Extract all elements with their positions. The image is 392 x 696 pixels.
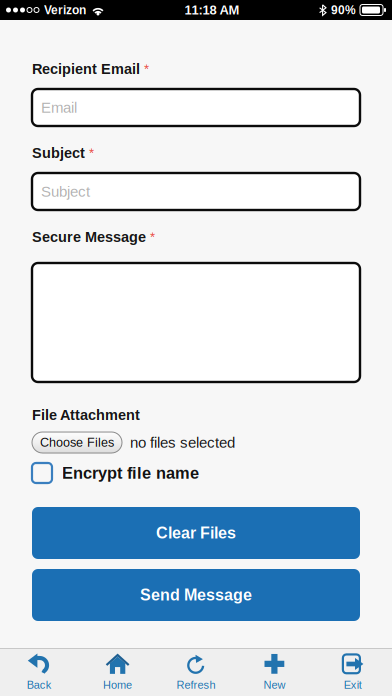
button[interactable]: Exit: [314, 649, 392, 696]
staticText: File Attachment: [32, 407, 140, 423]
staticText: Subject: [41, 183, 90, 200]
staticText: no files selected: [130, 434, 235, 451]
staticText: *: [89, 146, 94, 160]
staticText: Verizon: [44, 3, 86, 17]
staticText: Subject: [32, 145, 85, 161]
staticText: Refresh: [176, 679, 215, 691]
staticText: 90%: [331, 3, 356, 17]
staticText: Home: [103, 679, 132, 691]
staticText: Exit: [344, 679, 362, 691]
button[interactable]: Back: [0, 649, 78, 696]
staticText: New: [263, 679, 285, 691]
staticText: Back: [27, 679, 52, 691]
staticText: 11:18 AM: [184, 3, 239, 17]
staticText: Secure Message: [32, 229, 146, 245]
button[interactable]: Encrypt file name: [32, 463, 360, 483]
button[interactable]: Home: [78, 649, 157, 696]
staticText: Encrypt file name: [62, 464, 199, 482]
staticText: Send Message: [140, 586, 252, 604]
staticText: Clear Files: [156, 524, 236, 542]
staticText: Choose Files: [40, 435, 114, 450]
staticText: Recipient Email: [32, 61, 140, 77]
button[interactable]: Choose Files: [32, 432, 122, 453]
staticText: *: [150, 230, 155, 244]
staticText: *: [144, 62, 149, 76]
staticText: Email: [41, 99, 77, 116]
button[interactable]: New: [235, 649, 314, 696]
button[interactable]: Clear Files: [32, 507, 360, 559]
button[interactable]: Refresh: [157, 649, 235, 696]
button[interactable]: Send Message: [32, 569, 360, 621]
